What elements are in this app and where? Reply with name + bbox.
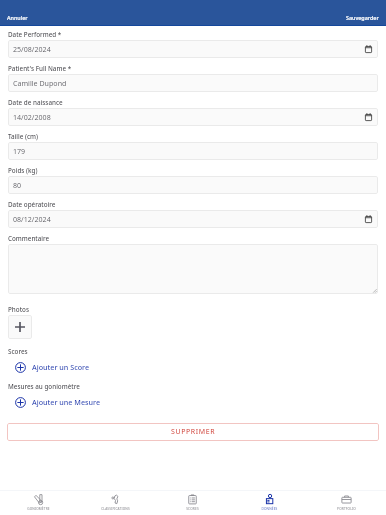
button[interactable]: Sauvegarder	[339, 9, 386, 26]
button[interactable]: DONNÉES	[231, 490, 308, 515]
staticText: 25/08/2024	[13, 44, 51, 54]
button[interactable]: SCORES	[154, 490, 231, 515]
staticText: Date Performed *	[8, 30, 62, 39]
staticText: Taille (cm)	[8, 132, 38, 141]
staticText: Mesures au goniomètre	[8, 382, 80, 391]
staticText: Scores	[8, 347, 28, 356]
staticText: Date de naissance	[8, 98, 63, 107]
staticText: Commentaire	[8, 234, 50, 243]
button[interactable]: GONIOMÈTRE	[0, 490, 77, 515]
staticText: DONNÉES	[261, 507, 278, 511]
button[interactable]	[8, 244, 378, 294]
button[interactable]: Ajouter une Mesure	[15, 395, 101, 409]
staticText: Camille Dupond	[13, 78, 67, 88]
staticText: Sauvegarder	[346, 14, 379, 21]
staticText: Date opératoire	[8, 200, 56, 209]
button[interactable]: CLASSIFICATIONS	[77, 490, 154, 515]
button[interactable]: SUPPRIMER	[7, 423, 379, 441]
staticText: Poids (kg)	[8, 166, 38, 175]
button[interactable]: Camille Dupond	[8, 74, 378, 92]
button[interactable]: 80	[8, 176, 378, 194]
button[interactable]: PORTFOLIO	[308, 490, 385, 515]
button[interactable]: Ajouter un Score	[15, 360, 90, 374]
staticText: PORTFOLIO	[337, 507, 356, 511]
staticText: Patient's Full Name *	[8, 64, 72, 73]
staticText: Annuler	[7, 14, 28, 21]
staticText: Ajouter un Score	[32, 362, 90, 372]
other: Choisir une date	[365, 45, 372, 53]
staticText: 14/02/2008	[13, 112, 51, 122]
button[interactable]: 08/12/2024	[8, 210, 378, 228]
staticText: SCORES	[186, 507, 199, 511]
other: Choisir une date	[365, 215, 372, 223]
staticText: 80	[13, 180, 22, 190]
button[interactable]: Annuler	[0, 9, 35, 26]
button[interactable]: 179	[8, 142, 378, 160]
staticText: GONIOMÈTRE	[27, 507, 50, 511]
staticText: SUPPRIMER	[171, 427, 216, 437]
staticText: CLASSIFICATIONS	[101, 507, 130, 511]
staticText: 179	[13, 146, 26, 156]
button[interactable]: Ajouter une photo	[8, 315, 32, 339]
button[interactable]: 14/02/2008	[8, 108, 378, 126]
staticText: 08/12/2024	[13, 214, 51, 224]
button[interactable]: 25/08/2024	[8, 40, 378, 58]
staticText: Ajouter une Mesure	[32, 397, 101, 407]
other: Choisir une date	[365, 113, 372, 121]
staticText: Photos	[8, 305, 29, 314]
